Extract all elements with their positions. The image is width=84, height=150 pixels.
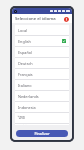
button[interactable]: Français (15, 69, 69, 79)
button[interactable]: Indonesia (15, 102, 69, 112)
staticText: Deutsch (18, 61, 66, 66)
staticText: Español (18, 50, 66, 55)
button[interactable]: English (15, 36, 69, 46)
button[interactable]: Nederlands (15, 91, 69, 101)
staticText: Français (18, 72, 66, 77)
button[interactable]: Finalizar (16, 130, 68, 137)
button[interactable]: Local (15, 25, 69, 35)
staticText: Nederlands (18, 94, 66, 99)
button[interactable]: Deutsch (15, 58, 69, 68)
staticText: Finalizar (34, 131, 50, 136)
staticText: Local (18, 28, 66, 33)
staticText: Indonesia (18, 105, 66, 110)
button[interactable]: Italiano (15, 80, 69, 90)
button[interactable]: Español (15, 47, 69, 57)
staticText: Seleccione el idioma (15, 16, 63, 22)
staticText: ไทย (18, 115, 66, 121)
staticText: Italiano (18, 83, 66, 88)
staticText: English (18, 39, 62, 44)
button[interactable]: Ayuda (63, 16, 69, 22)
button[interactable]: ไทย (15, 113, 69, 123)
